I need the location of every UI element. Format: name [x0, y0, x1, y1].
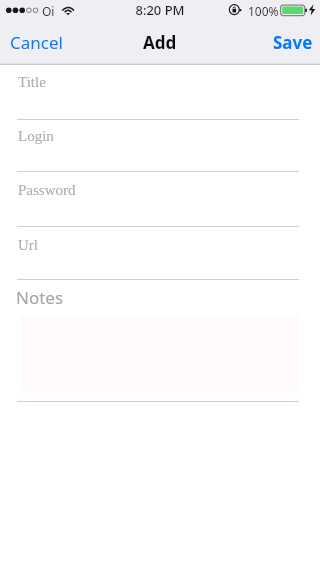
staticText: Url — [18, 237, 38, 254]
button[interactable]: Login — [0, 128, 320, 170]
staticText: Password — [18, 182, 76, 199]
staticText: Title — [18, 74, 46, 91]
staticText: 100% — [248, 3, 279, 19]
staticText: 8:20 PM — [0, 1, 320, 19]
staticText: Login — [18, 128, 54, 145]
staticText: Add — [143, 31, 177, 54]
button[interactable]: Cancel — [0, 23, 73, 63]
button[interactable]: Url — [0, 237, 320, 279]
staticText: Oi — [42, 3, 55, 19]
button[interactable]: Password — [0, 182, 320, 224]
button[interactable]: Save — [263, 23, 320, 62]
button[interactable]: Notes — [16, 286, 64, 309]
button[interactable]: Title — [0, 74, 320, 116]
staticText: Notes — [16, 286, 64, 309]
staticText: Cancel — [10, 31, 63, 54]
staticText: Save — [273, 31, 313, 54]
other: Rotation lock — [229, 4, 243, 16]
